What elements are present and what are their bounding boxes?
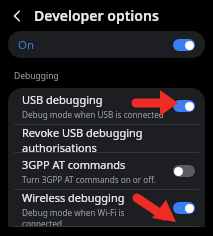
button[interactable]: 3GPP AT commands bbox=[8, 153, 205, 189]
staticText: Turn 3GPP AT commands on or off. bbox=[22, 174, 156, 185]
button[interactable]: On bbox=[8, 31, 205, 58]
staticText: USB debugging bbox=[22, 92, 103, 107]
button[interactable]: Toggle on bbox=[173, 39, 195, 51]
button[interactable]: Toggle on bbox=[173, 202, 195, 214]
staticText: Developer options bbox=[34, 6, 159, 25]
staticText: Debug mode when Wi-Fi is connected bbox=[22, 207, 166, 226]
staticText: Debugging bbox=[14, 70, 59, 82]
button[interactable]: Back bbox=[7, 6, 27, 26]
staticText: 3GPP AT commands bbox=[22, 157, 126, 172]
staticText: On bbox=[18, 37, 35, 53]
button[interactable]: Wireless debugging bbox=[8, 190, 205, 226]
button[interactable]: Toggle on bbox=[173, 100, 195, 112]
staticText: Revoke USB debugging authorisations bbox=[22, 125, 191, 152]
button[interactable]: Toggle off bbox=[173, 165, 195, 177]
button[interactable]: USB debugging bbox=[8, 88, 205, 124]
staticText: Debug mode when USB is connected bbox=[22, 109, 164, 120]
button[interactable]: Revoke USB debugging authorisations bbox=[8, 125, 205, 152]
staticText: Wireless debugging bbox=[22, 190, 125, 205]
